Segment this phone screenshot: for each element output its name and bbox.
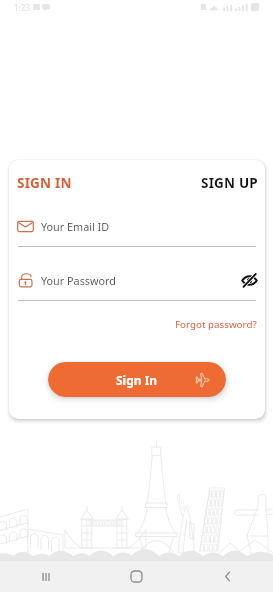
staticText: SIGN UP — [201, 174, 258, 192]
button[interactable]: Home — [91, 561, 182, 592]
button[interactable]: Forgot password? — [174, 315, 258, 334]
button[interactable]: Back — [182, 561, 273, 592]
staticText: 1:23 — [14, 2, 30, 13]
staticText: Sign In — [116, 372, 158, 388]
button[interactable]: Your Email ID — [17, 215, 257, 237]
button[interactable]: SIGN UP — [200, 171, 259, 195]
button[interactable]: Show password — [239, 270, 259, 290]
button[interactable]: SIGN IN — [16, 171, 73, 195]
button[interactable]: Sign In — [48, 362, 226, 397]
staticText: Your Email ID — [41, 219, 110, 234]
staticText: Forgot password? — [175, 318, 257, 331]
button[interactable]: Recent apps — [0, 561, 91, 592]
staticText: Your Password — [41, 273, 116, 288]
staticText: SIGN IN — [17, 174, 72, 192]
